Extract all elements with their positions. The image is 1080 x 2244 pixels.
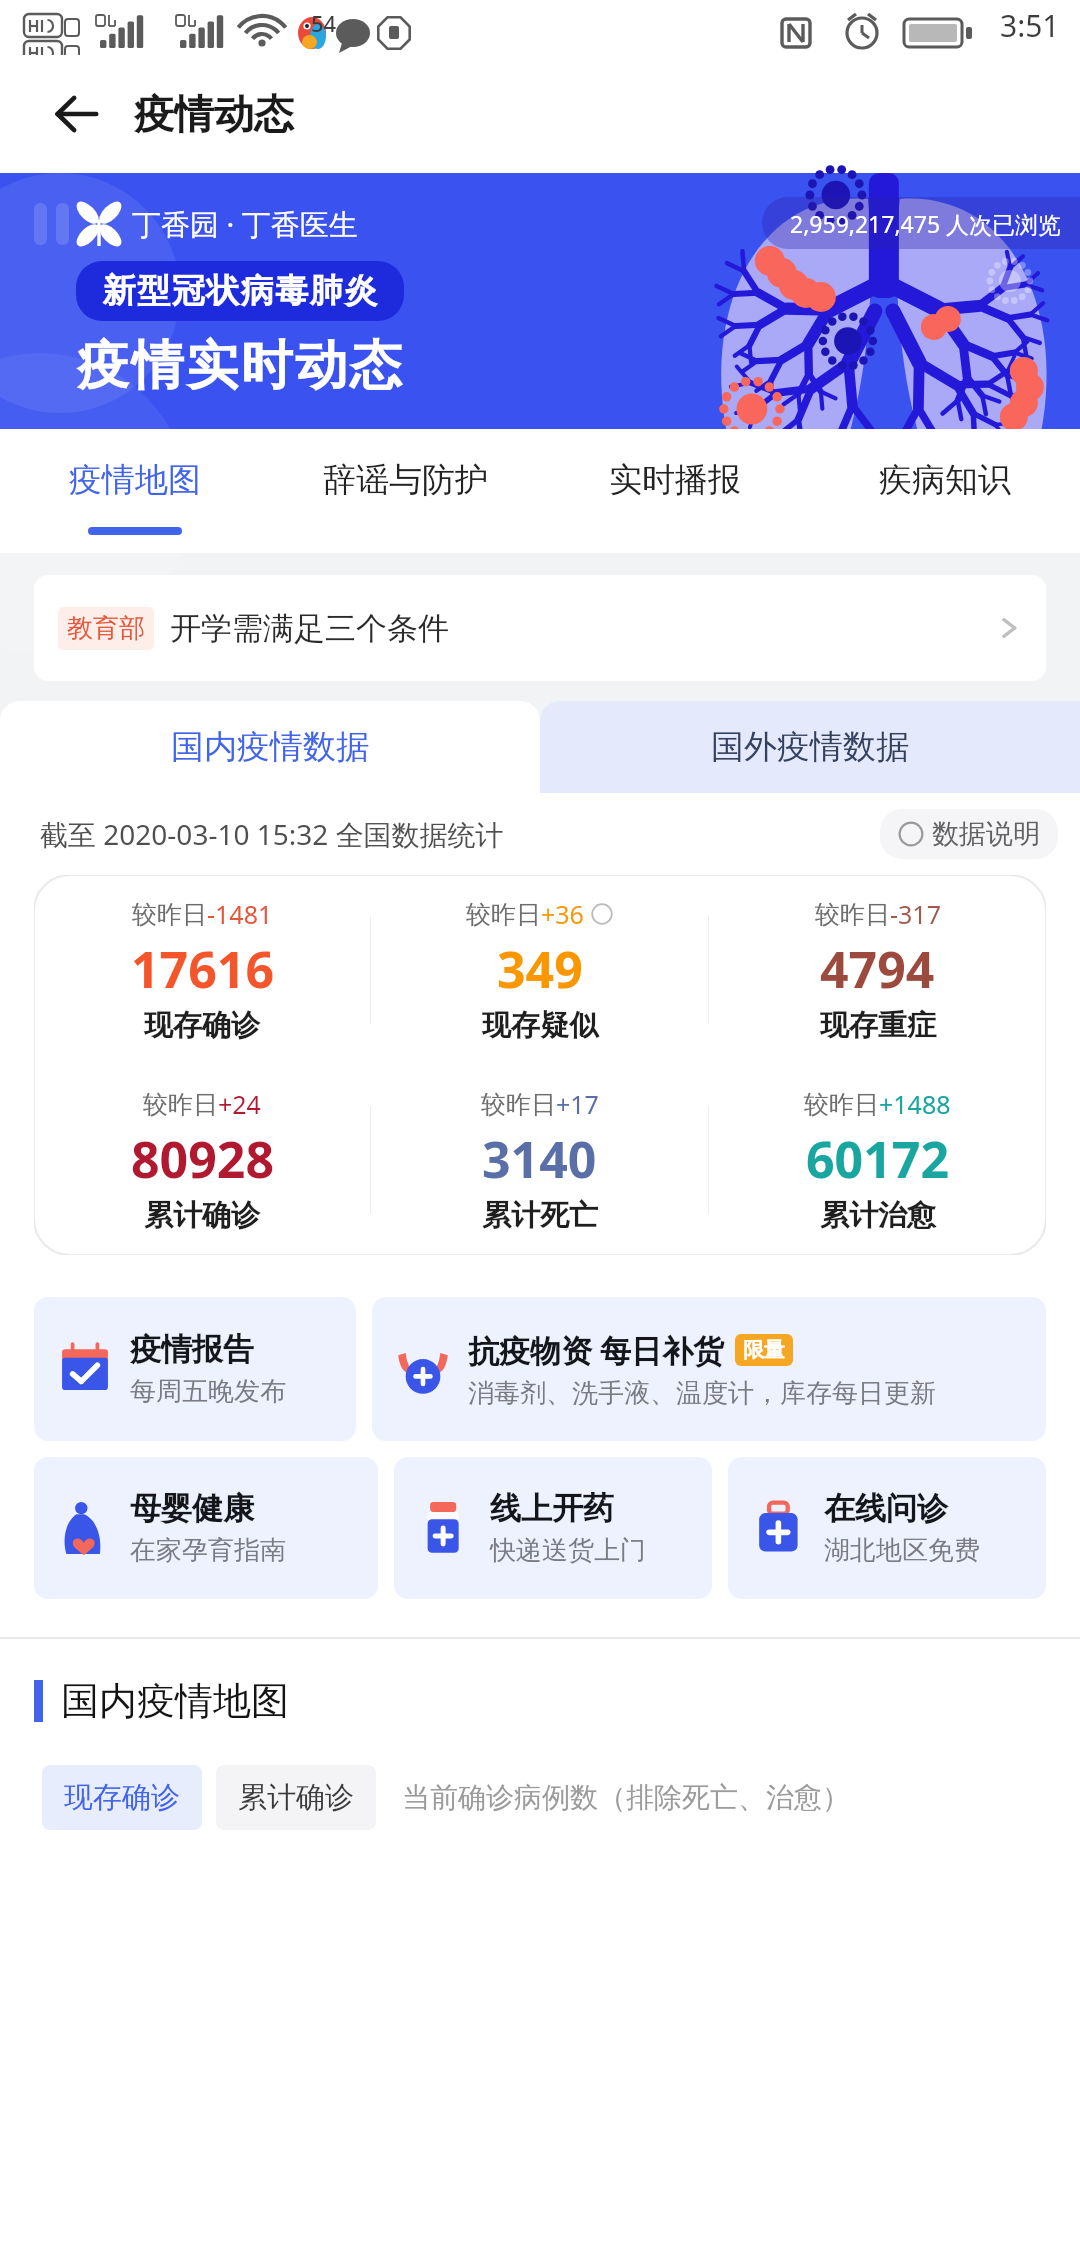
staticText: -1481 xyxy=(207,897,273,931)
staticText: 现存确诊 xyxy=(64,1779,180,1816)
staticText: 抗疫物资 每日补货 xyxy=(468,1329,725,1371)
staticText: 较昨日 xyxy=(132,899,207,930)
staticText: 累计确诊 xyxy=(144,1197,260,1234)
staticText: 17616 xyxy=(131,935,274,1003)
staticText: 现存疑似 xyxy=(482,1007,598,1044)
staticText: 累计死亡 xyxy=(482,1197,598,1234)
button[interactable]: 返回 xyxy=(40,78,112,150)
staticText: 较昨日 xyxy=(143,1089,218,1120)
staticText: 教育部 xyxy=(67,612,145,645)
staticText: 截至 2020-03-10 15:32 全国数据统计 xyxy=(40,815,504,853)
staticText: 开学需满足三个条件 xyxy=(170,609,449,648)
staticText: 4794 xyxy=(820,935,935,1003)
staticText: +24 xyxy=(218,1087,261,1121)
staticText: 数据说明 xyxy=(932,817,1040,851)
button[interactable]: 实时播报 xyxy=(540,429,810,553)
staticText: 国内疫情数据 xyxy=(171,726,369,768)
staticText: 线上开药 xyxy=(490,1489,614,1528)
staticText: 新型冠状病毒肺炎 xyxy=(102,270,378,312)
button[interactable]: 国外疫情数据 xyxy=(540,701,1080,793)
button[interactable]: 累计确诊 xyxy=(216,1765,376,1830)
staticText: 母婴健康 xyxy=(130,1489,254,1528)
button[interactable]: 数据说明 xyxy=(880,809,1058,859)
staticText: 快递送货上门 xyxy=(490,1534,646,1567)
staticText: 现存确诊 xyxy=(144,1007,260,1044)
staticText: 疾病知识 xyxy=(879,459,1011,501)
button[interactable]: 国内疫情数据 xyxy=(0,701,540,793)
staticText: 3:51 xyxy=(1000,5,1060,46)
staticText: 较昨日 xyxy=(815,899,890,930)
staticText: 每周五晚发布 xyxy=(130,1375,286,1408)
staticText: 在家孕育指南 xyxy=(130,1534,286,1567)
staticText: 3140 xyxy=(482,1125,597,1193)
staticText: 在线问诊 xyxy=(824,1489,948,1528)
staticText: 累计确诊 xyxy=(238,1779,354,1816)
staticText: 2,959,217,475 人次已浏览 xyxy=(790,208,1062,239)
staticText: 疫情动态 xyxy=(134,89,294,139)
staticText: 国外疫情数据 xyxy=(711,726,909,768)
staticText: 实时播报 xyxy=(609,459,741,501)
staticText: 80928 xyxy=(131,1125,274,1193)
staticText: 349 xyxy=(497,935,583,1003)
staticText: 疫情地图 xyxy=(69,459,201,501)
button[interactable]: 辞谣与防护 xyxy=(270,429,540,553)
staticText: +36 xyxy=(541,897,584,931)
button[interactable]: 疫情地图 xyxy=(0,429,270,553)
button[interactable]: 现存确诊 xyxy=(42,1765,202,1830)
staticText: 丁香园 · 丁香医生 xyxy=(132,204,358,244)
button[interactable]: 疫情报告 xyxy=(34,1297,356,1441)
staticText: 54 xyxy=(311,8,337,38)
staticText: 累计治愈 xyxy=(820,1197,936,1234)
staticText: 当前确诊病例数（排除死亡、治愈） xyxy=(402,1780,850,1815)
staticText: 限量 xyxy=(743,1337,785,1363)
staticText: -317 xyxy=(890,897,941,931)
staticText: 现存重症 xyxy=(820,1007,936,1044)
button[interactable]: 母婴健康 xyxy=(34,1457,378,1599)
staticText: 较昨日 xyxy=(481,1089,556,1120)
staticText: 消毒剂、洗手液、温度计，库存每日更新 xyxy=(468,1377,936,1410)
staticText: 较昨日 xyxy=(804,1089,879,1120)
staticText: +1488 xyxy=(879,1087,951,1121)
button[interactable]: 在线问诊 xyxy=(728,1457,1046,1599)
staticText: 较昨日 xyxy=(466,899,541,930)
button[interactable]: 疾病知识 xyxy=(810,429,1080,553)
staticText: 国内疫情地图 xyxy=(61,1677,289,1725)
staticText: 湖北地区免费 xyxy=(824,1534,980,1567)
staticText: 辞谣与防护 xyxy=(323,459,488,501)
button[interactable]: 线上开药 xyxy=(394,1457,712,1599)
staticText: 疫情报告 xyxy=(130,1330,254,1369)
staticText: 60172 xyxy=(806,1125,949,1193)
button[interactable]: 抗疫物资 每日补货 xyxy=(372,1297,1046,1441)
staticText: +17 xyxy=(556,1087,599,1121)
staticText: 疫情实时动态 xyxy=(76,333,403,399)
button[interactable]: 教育部 xyxy=(34,575,1046,681)
